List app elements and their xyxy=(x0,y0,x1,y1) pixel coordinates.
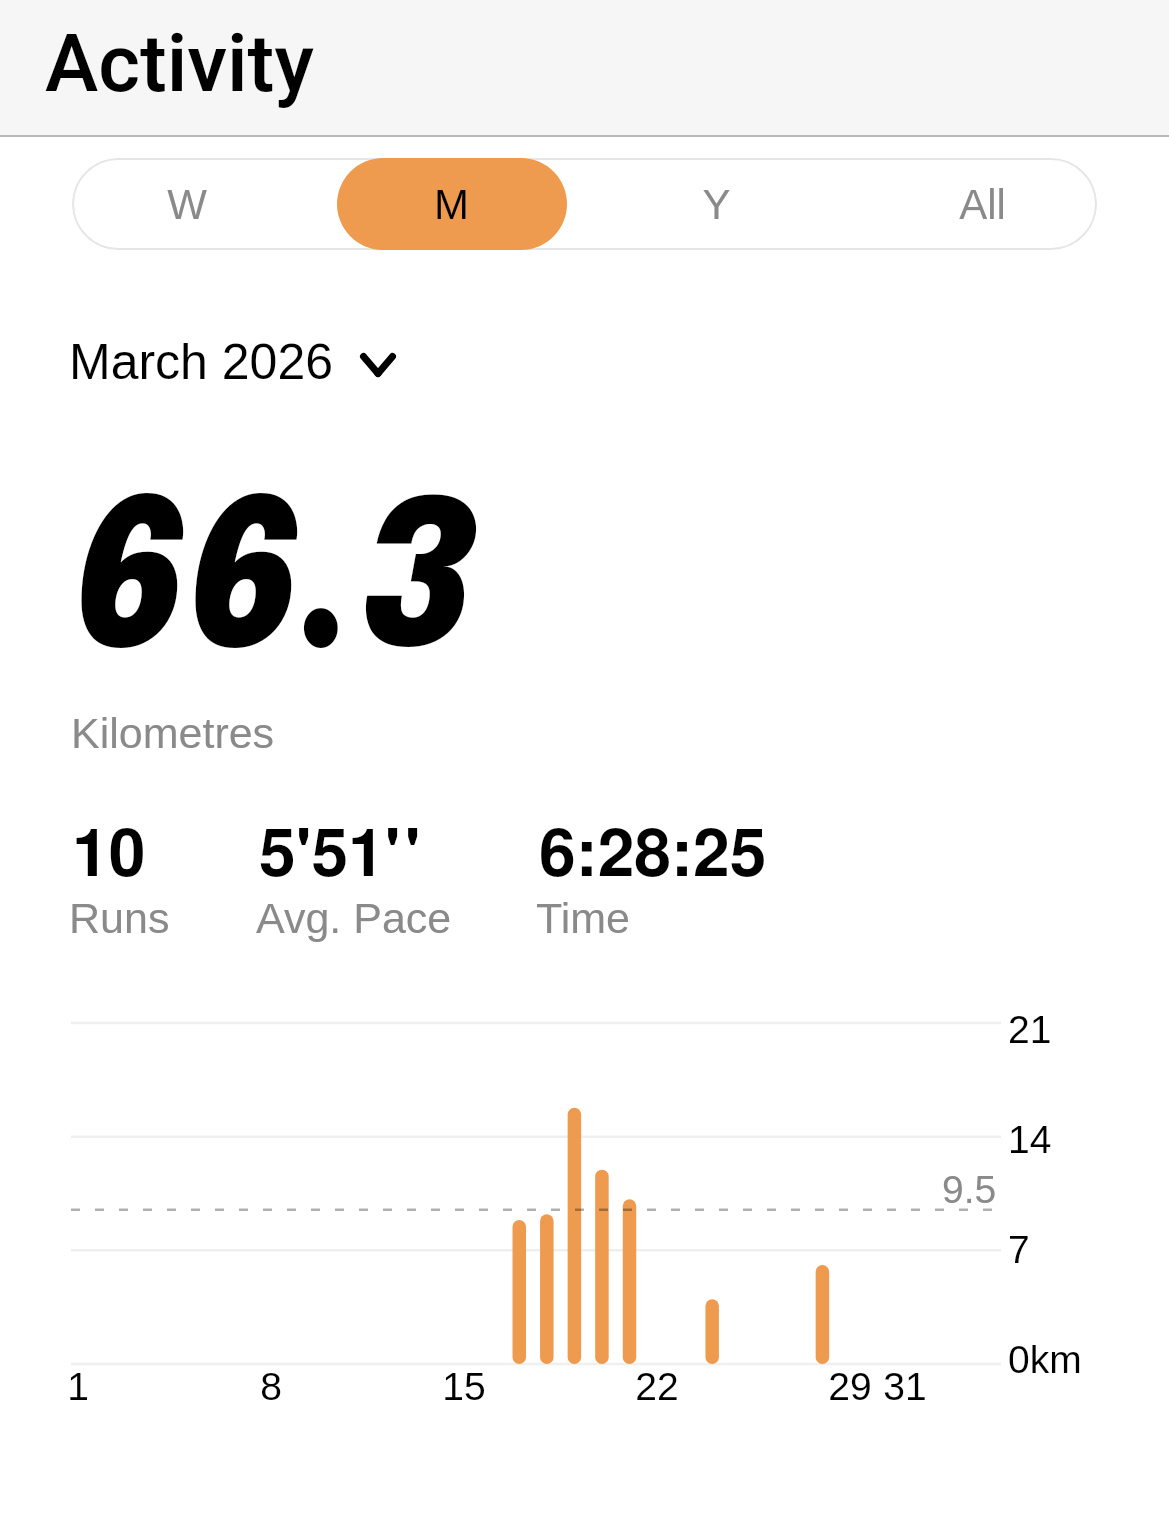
staticText: 5'51' ' xyxy=(259,802,421,897)
button[interactable]: All xyxy=(867,158,1097,250)
button[interactable]: W xyxy=(72,158,302,250)
button[interactable] xyxy=(337,158,567,250)
staticText: 7 xyxy=(1008,1228,1030,1272)
staticText: Activity xyxy=(45,17,314,111)
staticText: 15 xyxy=(442,1365,486,1409)
staticText: 22 xyxy=(635,1365,679,1409)
staticText: W xyxy=(167,181,207,228)
staticText: Time xyxy=(536,894,630,942)
staticText: 29 xyxy=(828,1365,872,1409)
staticText: 66.3 xyxy=(73,485,472,693)
staticText: Runs xyxy=(69,894,170,942)
staticText: 10 xyxy=(72,802,146,897)
staticText: 0km xyxy=(1008,1338,1082,1382)
staticText: 9.5 xyxy=(942,1168,997,1212)
button[interactable]: M xyxy=(336,158,566,250)
other: Change month xyxy=(360,353,396,377)
button[interactable]: Y xyxy=(601,158,831,250)
staticText: 21 xyxy=(1008,1008,1052,1052)
staticText: 8 xyxy=(260,1365,282,1409)
staticText: 6:28:25 xyxy=(539,802,767,897)
staticText: M xyxy=(434,181,469,228)
staticText: Y xyxy=(702,181,731,228)
staticText: All xyxy=(959,181,1006,228)
staticText: Avg. Pace xyxy=(256,894,452,942)
staticText: 1 xyxy=(67,1365,89,1409)
staticText: March 2026 xyxy=(69,334,334,390)
staticText: 14 xyxy=(1008,1118,1052,1162)
staticText: Kilometres xyxy=(71,709,275,757)
staticText: 31 xyxy=(883,1365,927,1409)
button[interactable]: March 2026 xyxy=(60,325,410,397)
